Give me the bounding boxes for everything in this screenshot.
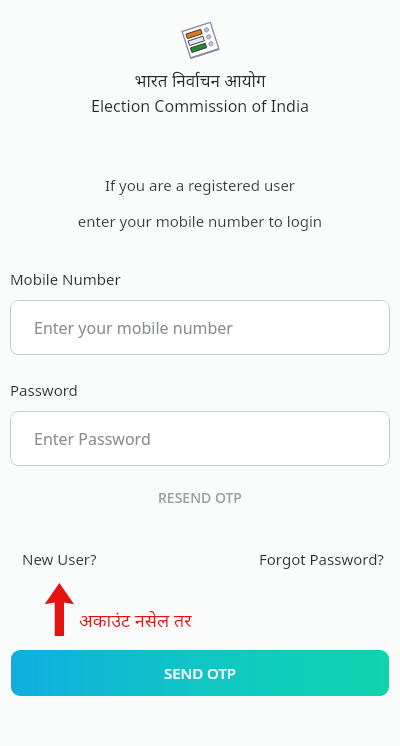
button[interactable]: RESEND OTP [0,488,400,507]
staticText: If you are a registered user [0,175,400,195]
staticText: Mobile Number [10,269,121,289]
other: Arrow pointing to New User [44,583,76,636]
staticText: Enter Password [34,428,151,450]
button[interactable]: Enter your mobile number [10,300,390,355]
button[interactable]: Enter Password [10,411,390,466]
staticText: Forgot Password? [259,549,384,569]
staticText: Password [10,380,78,400]
staticText: SEND OTP [164,663,237,683]
staticText: enter your mobile number to login [0,211,400,231]
button[interactable]: Forgot Password? [259,547,400,571]
other: Election Commission of India logo [180,20,220,60]
staticText: Enter your mobile number [34,317,233,339]
staticText: Election Commission of India [0,95,400,117]
button[interactable]: New User? [0,547,97,571]
staticText: RESEND OTP [158,488,242,507]
staticText: New User? [22,549,97,569]
staticText: भारत निर्वाचन आयोग [0,69,400,92]
button[interactable]: SEND OTP [11,650,389,696]
staticText: अकाउंट नसेल तर [79,608,192,633]
